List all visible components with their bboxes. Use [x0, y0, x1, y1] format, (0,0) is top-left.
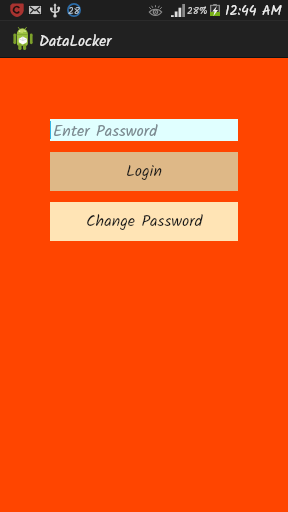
button[interactable]: Change Password: [50, 202, 238, 241]
staticText: 12:44 AM: [225, 0, 282, 20]
staticText: DataLocker: [39, 30, 112, 55]
button[interactable]: Login: [50, 152, 238, 191]
button[interactable]: Enter Password: [50, 119, 238, 141]
staticText: Change Password: [86, 209, 203, 235]
staticText: Enter Password: [53, 119, 158, 141]
staticText: 28: [68, 3, 80, 17]
staticText: Login: [126, 159, 162, 185]
staticText: 28%: [187, 3, 208, 19]
